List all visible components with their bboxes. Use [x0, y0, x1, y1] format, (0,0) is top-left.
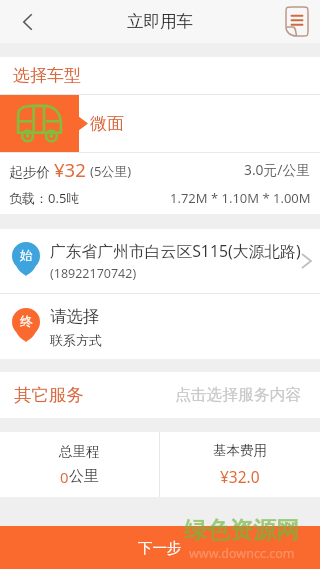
button[interactable]: Order records — [276, 0, 320, 43]
staticText: www.downcc.com — [189, 545, 295, 562]
button[interactable]: 微面 — [0, 95, 320, 152]
staticText: 1.72M * 1.10M * 1.00M — [170, 189, 311, 207]
staticText: (5公里) — [90, 162, 132, 180]
staticText: 其它服务 — [14, 384, 84, 406]
staticText: 广东省广州市白云区S115(大源北路) — [50, 240, 301, 262]
staticText: 选择车型 — [13, 65, 81, 86]
staticText: 终 — [20, 313, 33, 329]
staticText: 微面 — [90, 113, 124, 134]
staticText: 总里程 — [59, 443, 100, 460]
staticText: 绿色资源网 — [184, 516, 299, 545]
staticText: ¥32.0 — [220, 466, 260, 487]
button[interactable]: 其它服务 — [0, 372, 320, 418]
staticText: 请选择 — [50, 306, 100, 327]
button[interactable]: 始 — [0, 229, 320, 293]
button[interactable]: 终 — [0, 294, 320, 359]
button[interactable]: 下一步 — [0, 526, 320, 569]
staticText: 起步价 — [9, 164, 51, 181]
staticText: 3.0元/公里 — [244, 160, 311, 179]
staticText: 负载：0.5吨 — [9, 189, 80, 207]
button[interactable]: Back — [0, 0, 48, 43]
staticText: 基本费用 — [213, 442, 267, 459]
staticText: 0 — [60, 467, 69, 487]
staticText: 联系方式 — [50, 332, 102, 348]
staticText: 公里 — [69, 467, 99, 486]
staticText: 点击选择服务内容 — [175, 385, 302, 405]
staticText: 立即用车 — [127, 11, 193, 32]
staticText: (18922170742) — [50, 265, 137, 282]
staticText: 始 — [20, 247, 33, 263]
staticText: ¥32 — [54, 157, 86, 182]
staticText: 下一步 — [138, 539, 182, 557]
